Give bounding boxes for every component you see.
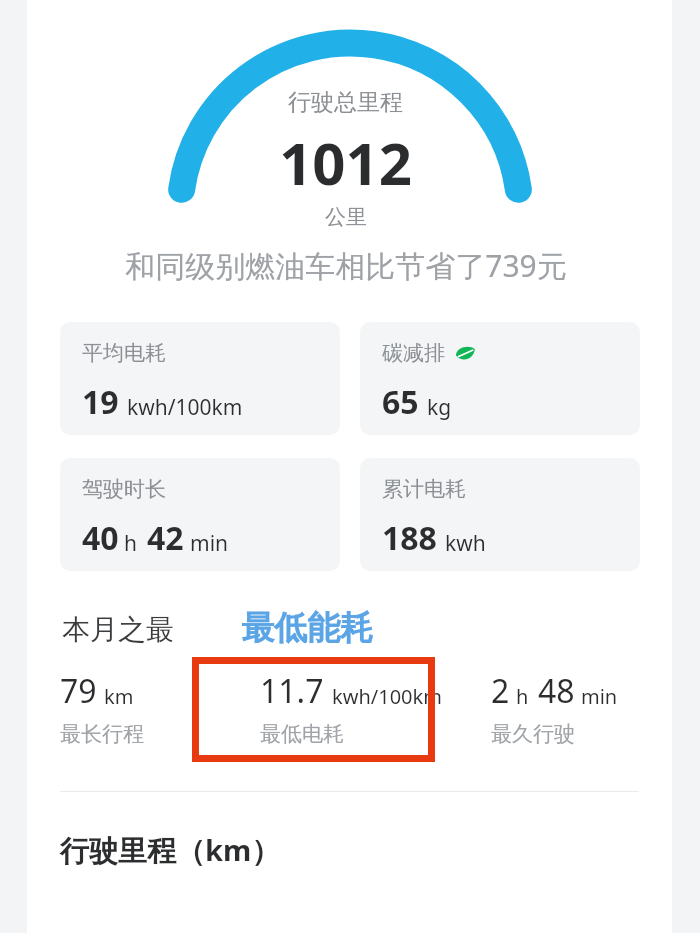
staticText: 188: [382, 516, 437, 560]
staticText: 11.7: [260, 669, 324, 713]
button[interactable]: 平均电耗: [60, 322, 340, 435]
staticText: 42: [147, 516, 184, 560]
staticText: 1012: [279, 123, 412, 202]
staticText: 和同级别燃油车相比节省了739元: [125, 245, 567, 286]
button[interactable]: 79: [60, 669, 230, 747]
staticText: 公里: [325, 204, 367, 230]
staticText: 最久行驶: [491, 721, 575, 747]
staticText: min: [581, 683, 618, 710]
staticText: 65: [382, 380, 419, 424]
staticText: 79: [60, 669, 97, 713]
staticText: 40: [82, 516, 119, 560]
staticText: 最低电耗: [260, 721, 344, 747]
button[interactable]: 碳减排: [360, 322, 640, 435]
staticText: kwh/100km: [332, 683, 442, 710]
staticText: 最低能耗: [241, 607, 373, 649]
staticText: 19: [82, 380, 119, 424]
staticText: 行驶总里程: [288, 88, 403, 117]
staticText: 碳减排: [382, 340, 445, 366]
staticText: h: [516, 683, 529, 710]
staticText: 48: [538, 669, 575, 713]
staticText: h: [124, 529, 137, 558]
staticText: kg: [427, 393, 452, 422]
button[interactable]: 2: [469, 669, 640, 747]
button[interactable]: 驾驶时长: [60, 458, 340, 571]
button[interactable]: 11.7: [230, 669, 469, 747]
staticText: min: [190, 529, 229, 558]
staticText: 行驶里程（km）: [60, 830, 281, 870]
staticText: 累计电耗: [382, 476, 466, 502]
staticText: 驾驶时长: [82, 476, 166, 502]
button[interactable]: 累计电耗: [360, 458, 640, 571]
staticText: kwh: [445, 529, 486, 558]
staticText: 本月之最: [62, 612, 174, 647]
staticText: 2: [491, 669, 510, 713]
staticText: km: [104, 683, 134, 710]
staticText: 平均电耗: [82, 340, 166, 366]
staticText: kwh/100km: [127, 393, 243, 422]
staticText: 最长行程: [60, 721, 144, 747]
